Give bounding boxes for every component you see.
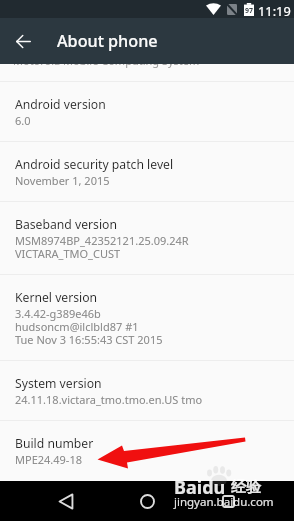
staticText: Motorola Mobile Computing System (13, 53, 200, 68)
staticText: Baseband version (15, 216, 117, 233)
button[interactable]: Android security patch level (0, 142, 294, 201)
staticText: About phone (57, 30, 158, 52)
staticText: System version (15, 375, 102, 392)
staticText: 6.0 (15, 113, 31, 128)
staticText: Build number (15, 435, 94, 452)
staticText: 11:19 (258, 2, 291, 19)
staticText: Android security patch level (15, 156, 174, 173)
button[interactable]: Recent apps (206, 481, 250, 521)
button[interactable]: Back (44, 481, 88, 521)
staticText: jingyan.baidu.com (174, 494, 274, 510)
staticText: Kernel version (15, 289, 98, 306)
button[interactable]: System version (0, 361, 294, 420)
staticText: November 1, 2015 (15, 173, 110, 188)
button[interactable]: Navigate up (0, 18, 46, 64)
staticText: MPE24.49-18 (15, 452, 82, 467)
button[interactable]: Android version (0, 82, 294, 141)
staticText: 24.11.18.victara_tmo.tmo.en.US tmo (15, 392, 203, 407)
staticText: 3.4.42-g389e46b hudsoncm@ilclbld87 #1 Tu… (15, 306, 163, 347)
staticText: Android version (15, 96, 106, 113)
staticText: MSM8974BP_42352121.25.09.24R VICTARA_TMO… (15, 233, 189, 261)
button[interactable]: Build number (0, 421, 294, 480)
staticText: Baidu (174, 475, 226, 500)
staticText: 97 (245, 6, 254, 16)
staticText: 经验 (231, 478, 261, 497)
button[interactable]: Home (125, 481, 169, 521)
button[interactable]: Baseband version (0, 202, 294, 274)
button[interactable]: Kernel version (0, 275, 294, 360)
